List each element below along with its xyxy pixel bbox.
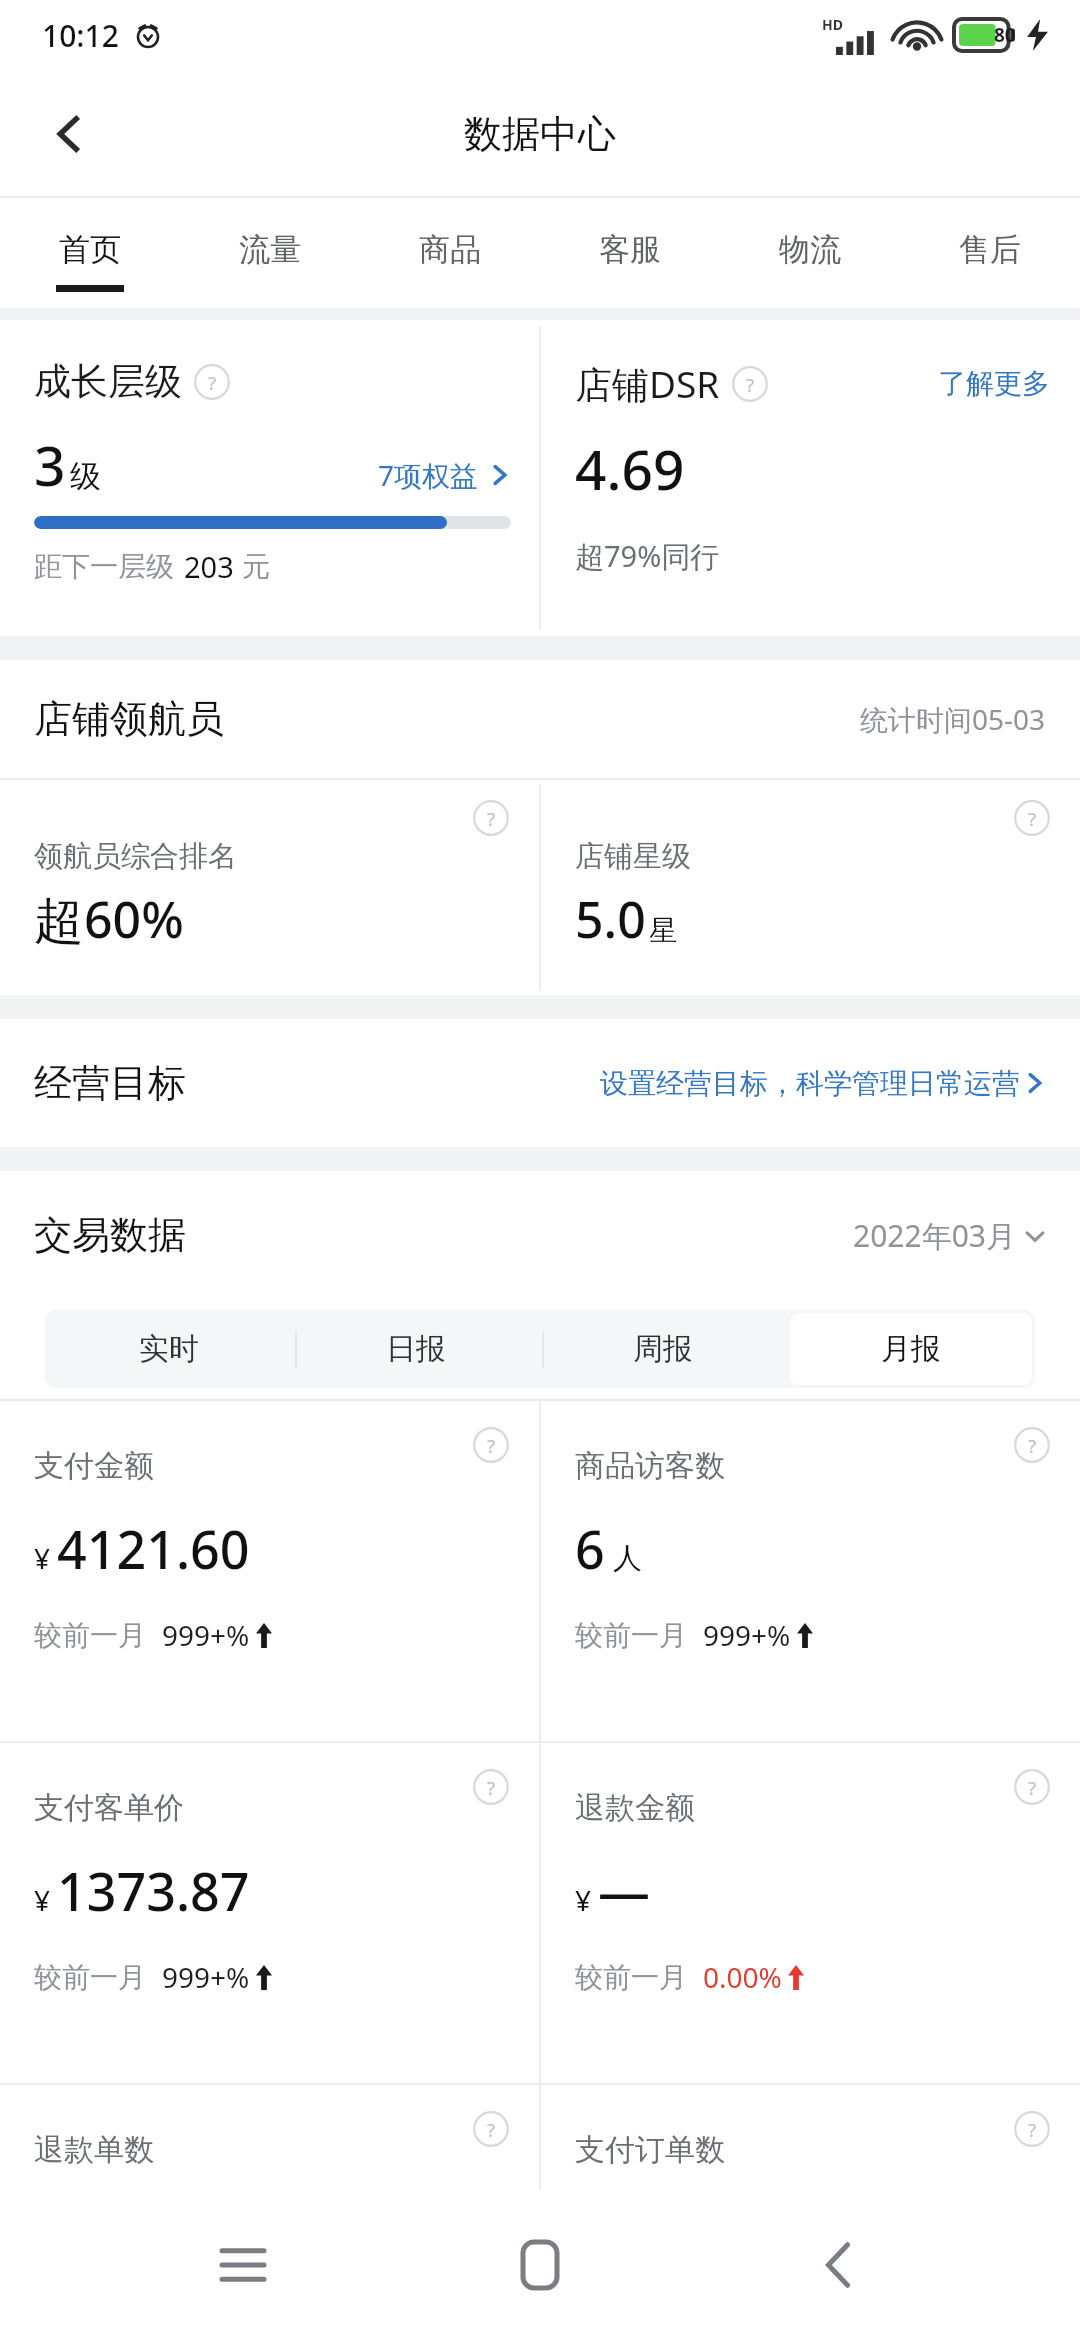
staticText: ? [487, 2117, 496, 2142]
staticText: 数据中心 [464, 110, 616, 158]
staticText: 999+% [703, 1616, 791, 1654]
button[interactable]: 帮助 [0, 1743, 539, 2083]
staticText: 物流 [779, 230, 841, 269]
staticText: 店铺DSR [575, 358, 720, 409]
staticText: ¥ [575, 1881, 592, 1919]
button[interactable]: 主屏幕 [485, 2210, 595, 2320]
button[interactable]: 帮助 [0, 1401, 539, 1741]
staticText: 交易数据 [34, 1211, 186, 1259]
staticText: 元 [242, 549, 270, 584]
staticText: 超60% [34, 885, 184, 953]
staticText: 2022年03月 [853, 1215, 1016, 1256]
staticText: 客服 [599, 230, 661, 269]
staticText: 人 [613, 1540, 642, 1577]
staticText: 领航员综合排名 [34, 838, 237, 875]
button[interactable]: 帮助 [473, 800, 509, 836]
button[interactable]: 7项权益 [378, 456, 511, 494]
staticText: ? [208, 370, 217, 395]
button[interactable]: 首页 [0, 198, 180, 308]
button[interactable]: 商品 [360, 198, 540, 308]
staticText: 较前一月 [575, 1960, 687, 1995]
staticText: 支付订单数 [575, 2131, 725, 2169]
button[interactable]: 帮助 [541, 1743, 1080, 2083]
staticText: ? [487, 1433, 496, 1458]
button[interactable]: 最近任务 [188, 2210, 298, 2320]
staticText: 店铺星级 [575, 838, 691, 875]
button[interactable]: 帮助 [732, 366, 768, 402]
staticText: 售后 [959, 230, 1021, 269]
staticText: 超79%同行 [575, 536, 720, 576]
button[interactable]: 帮助 [541, 1401, 1080, 1741]
button[interactable]: 售后 [900, 198, 1080, 308]
staticText: 203 [184, 547, 234, 586]
staticText: 实时 [139, 1330, 199, 1368]
button[interactable]: 店铺领航员 [0, 660, 1080, 778]
staticText: 级 [70, 457, 101, 496]
staticText: 经营目标 [34, 1059, 186, 1107]
staticText: 退款金额 [575, 1789, 695, 1827]
button[interactable]: 物流 [720, 198, 900, 308]
staticText: 星 [649, 913, 677, 948]
button[interactable]: 帮助 [1014, 1769, 1050, 1805]
button[interactable]: 实时 [48, 1313, 289, 1385]
staticText: ? [487, 806, 496, 831]
button[interactable]: 帮助 [194, 364, 230, 400]
staticText: 设置经营目标，科学管理日常运营 [600, 1066, 1020, 1101]
staticText: 较前一月 [34, 1960, 146, 1995]
staticText: 统计时间05-03 [860, 700, 1046, 738]
staticText: 0.00% [703, 1958, 782, 1996]
staticText: 退款单数 [34, 2131, 154, 2169]
staticText: 5.0 [575, 885, 646, 953]
button[interactable]: 店铺DSR [541, 320, 1080, 636]
staticText: ? [1028, 2117, 1037, 2142]
button[interactable]: 经营目标 [0, 1019, 1080, 1147]
staticText: HD [822, 15, 843, 34]
button[interactable]: 帮助 [473, 2111, 509, 2147]
staticText: 999+% [162, 1958, 250, 1996]
staticText: ¥ [34, 1539, 51, 1577]
staticText: 商品 [419, 230, 481, 269]
staticText: ¥ [34, 1881, 51, 1919]
staticText: 流量 [239, 230, 301, 269]
staticText: 支付客单价 [34, 1789, 184, 1827]
button[interactable]: 返回 [783, 2210, 893, 2320]
staticText: 月报 [881, 1330, 941, 1368]
button[interactable]: 帮助 [1014, 2111, 1050, 2147]
staticText: 4121.60 [57, 1513, 250, 1584]
staticText: ? [1028, 806, 1037, 831]
staticText: ? [487, 1775, 496, 1800]
button[interactable]: 帮助 [473, 1769, 509, 1805]
button[interactable]: 返回 [28, 93, 110, 175]
staticText: 4.69 [575, 431, 685, 506]
staticText: 成长层级 [34, 358, 182, 405]
staticText: ? [1028, 1775, 1037, 1800]
button[interactable]: 流量 [180, 198, 360, 308]
staticText: 7项权益 [378, 456, 479, 494]
staticText: 支付金额 [34, 1447, 154, 1485]
button[interactable]: 帮助 [1014, 1427, 1050, 1463]
button[interactable]: 帮助 [1014, 800, 1050, 836]
button[interactable]: 帮助 [541, 780, 1080, 995]
staticText: 了解更多 [938, 366, 1050, 401]
staticText: 较前一月 [34, 1618, 146, 1653]
button[interactable]: 日报 [295, 1313, 536, 1385]
button[interactable]: 客服 [540, 198, 720, 308]
button[interactable]: 2022年03月 [853, 1215, 1046, 1256]
staticText: 3 [34, 427, 66, 502]
staticText: 1373.87 [57, 1855, 250, 1926]
button[interactable]: 月报 [790, 1313, 1032, 1385]
staticText: 999+% [162, 1616, 250, 1654]
staticText: 较前一月 [575, 1618, 687, 1653]
staticText: 80 [994, 22, 1016, 48]
button[interactable]: 帮助 [473, 1427, 509, 1463]
staticText: 6 [575, 1513, 605, 1584]
staticText: ? [746, 372, 755, 397]
staticText: — [598, 1855, 651, 1926]
button[interactable]: 成长层级 [0, 320, 539, 636]
staticText: 距下一层级 [34, 549, 174, 584]
button[interactable]: 周报 [542, 1313, 784, 1385]
staticText: 首页 [59, 230, 121, 269]
staticText: 商品访客数 [575, 1447, 725, 1485]
button[interactable]: 了解更多 [938, 366, 1050, 401]
button[interactable]: 帮助 [0, 780, 539, 995]
